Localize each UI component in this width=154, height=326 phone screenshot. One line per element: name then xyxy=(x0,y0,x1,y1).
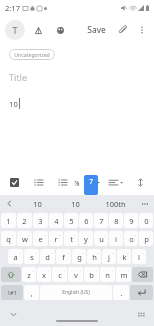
button[interactable]: 7 xyxy=(84,175,98,195)
staticText: k xyxy=(122,252,127,262)
staticText: · xyxy=(97,250,99,256)
staticText: 10 xyxy=(33,199,42,209)
button[interactable]: · xyxy=(56,249,71,264)
button[interactable]: · xyxy=(37,267,51,282)
button[interactable]: Switch keyboard xyxy=(134,307,148,321)
button[interactable]: Symbols xyxy=(1,285,23,300)
staticText: ⅞ xyxy=(74,179,80,188)
button[interactable]: Shift xyxy=(1,267,21,282)
button[interactable]: · xyxy=(79,231,93,246)
button[interactable]: 10 xyxy=(56,199,94,209)
button[interactable]: 9 xyxy=(124,213,138,228)
staticText: 7 xyxy=(99,216,104,226)
staticText: 10 xyxy=(9,99,18,109)
button[interactable]: · xyxy=(84,267,99,282)
staticText: 6 xyxy=(84,216,89,226)
staticText: · xyxy=(59,232,61,238)
button[interactable]: · xyxy=(24,249,39,264)
button[interactable]: · xyxy=(102,249,116,264)
button[interactable]: · xyxy=(116,267,131,282)
button[interactable]: Draw xyxy=(29,21,47,39)
staticText: Uncategorized xyxy=(14,51,50,58)
staticText: c xyxy=(58,270,62,280)
button[interactable]: · xyxy=(87,249,101,264)
button[interactable]: Alignment xyxy=(109,178,124,187)
button[interactable]: 6 xyxy=(79,213,93,228)
button[interactable]: Text size xyxy=(86,178,101,187)
staticText: w xyxy=(22,234,28,244)
staticText: · xyxy=(142,250,144,256)
button[interactable]: English (US) xyxy=(40,285,112,300)
staticText: · xyxy=(44,232,46,238)
staticText: · xyxy=(82,250,84,256)
button[interactable]: · xyxy=(117,249,131,264)
button[interactable]: · xyxy=(72,249,86,264)
button[interactable]: · xyxy=(1,231,16,246)
staticText: · xyxy=(127,268,129,274)
staticText: 100th xyxy=(105,199,126,209)
button[interactable]: 5 xyxy=(64,213,78,228)
button[interactable]: · xyxy=(124,231,138,246)
staticText: 5 xyxy=(69,216,74,226)
button[interactable]: · xyxy=(33,231,48,246)
staticText: · xyxy=(12,232,14,238)
button[interactable]: Checklist xyxy=(6,174,22,190)
staticText: · xyxy=(89,232,91,238)
button[interactable]: · xyxy=(64,231,78,246)
button[interactable]: Backspace xyxy=(132,267,153,282)
button[interactable]: · xyxy=(94,231,108,246)
button[interactable]: · xyxy=(40,249,55,264)
staticText: p xyxy=(144,234,149,244)
button[interactable]: · xyxy=(132,249,146,264)
staticText: 2 xyxy=(22,216,27,226)
button[interactable]: · xyxy=(139,231,153,246)
button[interactable]: · xyxy=(109,231,123,246)
staticText: Save xyxy=(87,24,106,36)
button[interactable]: 100th xyxy=(94,199,136,209)
button[interactable]: 3 xyxy=(33,213,48,228)
staticText: , xyxy=(30,288,33,298)
button[interactable]: Numbered list xyxy=(30,174,46,190)
staticText: j xyxy=(108,252,110,262)
staticText: · xyxy=(47,268,49,274)
button[interactable]: · xyxy=(52,267,67,282)
button[interactable]: · xyxy=(22,267,36,282)
staticText: g xyxy=(77,252,82,262)
staticText: · xyxy=(35,250,37,256)
staticText: a xyxy=(13,252,18,262)
button[interactable]: Bulleted list xyxy=(54,174,70,190)
button[interactable]: ⅞ xyxy=(70,175,84,192)
button[interactable]: Line spacing xyxy=(132,174,148,190)
button[interactable]: 2 xyxy=(17,213,32,228)
button[interactable]: Attach xyxy=(114,21,132,39)
button[interactable]: · xyxy=(8,249,23,264)
staticText: 7 xyxy=(89,177,93,186)
button[interactable]: Brush xyxy=(51,21,69,39)
button[interactable]: . xyxy=(113,285,129,300)
staticText: · xyxy=(51,250,53,256)
button[interactable]: Save xyxy=(84,21,109,39)
button[interactable]: Previous xyxy=(0,195,18,212)
button[interactable]: 4 xyxy=(49,213,63,228)
button[interactable]: Enter xyxy=(130,285,153,300)
staticText: d xyxy=(45,252,50,262)
staticText: l xyxy=(138,252,140,262)
button[interactable]: Text format xyxy=(5,20,25,40)
button[interactable]: · xyxy=(68,267,83,282)
button[interactable]: 10 xyxy=(18,199,56,209)
staticText: q xyxy=(6,234,11,244)
button[interactable]: Hide keyboard xyxy=(6,307,20,321)
button[interactable]: 1 xyxy=(1,213,16,228)
button[interactable]: 7 xyxy=(94,213,108,228)
staticText: 2:17 xyxy=(5,3,20,13)
staticText: 0 xyxy=(144,216,149,226)
button[interactable]: · xyxy=(100,267,115,282)
button[interactable]: , xyxy=(24,285,39,300)
button[interactable]: · xyxy=(17,231,32,246)
button[interactable]: 0 xyxy=(139,213,153,228)
button[interactable]: More suggestions xyxy=(136,195,154,212)
button[interactable]: 8 xyxy=(109,213,123,228)
button[interactable]: Uncategorized xyxy=(9,49,55,60)
button[interactable]: · xyxy=(49,231,63,246)
button[interactable]: More options xyxy=(133,21,151,39)
